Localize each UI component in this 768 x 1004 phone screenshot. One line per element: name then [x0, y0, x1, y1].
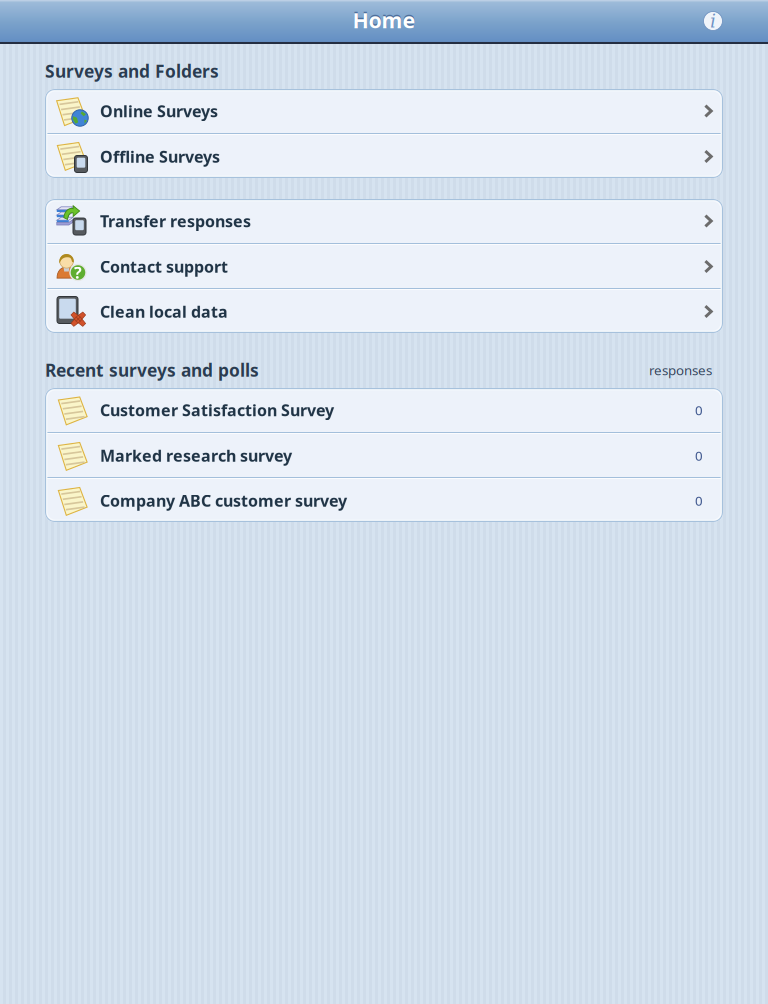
staticText: 0	[695, 492, 703, 509]
staticText: responses	[649, 361, 712, 379]
button[interactable]: ?	[45, 245, 723, 288]
button[interactable]: Company ABC customer survey	[45, 479, 723, 522]
staticText: Transfer responses	[100, 210, 251, 232]
button[interactable]: Clean local data	[45, 290, 723, 333]
staticText: 0	[695, 447, 703, 464]
staticText: Contact support	[100, 256, 228, 277]
staticText: 0	[695, 401, 703, 419]
button[interactable]: Marked research survey	[45, 434, 723, 477]
button[interactable]: Online Surveys	[45, 89, 723, 133]
staticText: Surveys and Folders	[45, 59, 219, 82]
button[interactable]: Information	[691, 0, 735, 42]
staticText: Company ABC customer survey	[100, 490, 347, 511]
button[interactable]: Customer Satisfaction Survey	[45, 388, 723, 432]
staticText: Online Surveys	[100, 100, 218, 122]
staticText: i	[710, 10, 716, 32]
button[interactable]: Transfer responses	[45, 199, 723, 243]
staticText: Home	[352, 4, 415, 33]
staticText: Marked research survey	[100, 445, 292, 466]
staticText: Home	[352, 6, 415, 34]
button[interactable]: Offline Surveys	[45, 135, 723, 178]
staticText: ?	[74, 262, 82, 283]
staticText: Recent surveys and polls	[45, 358, 259, 381]
staticText: Offline Surveys	[100, 146, 220, 167]
staticText: Clean local data	[100, 301, 228, 322]
staticText: Customer Satisfaction Survey	[100, 399, 334, 421]
